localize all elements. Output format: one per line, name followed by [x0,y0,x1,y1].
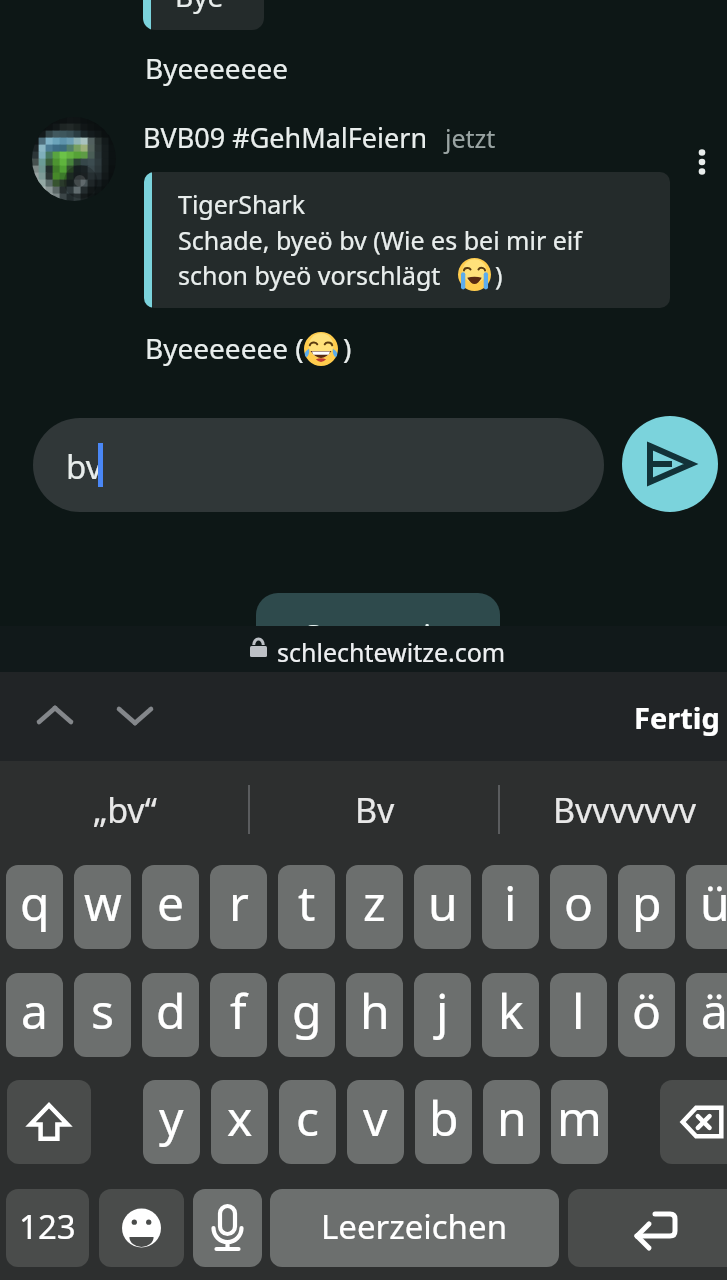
button[interactable]: More options [686,136,718,186]
button[interactable]: Shift [7,1080,91,1164]
staticText: z [363,870,386,935]
staticText: l [572,978,585,1043]
button[interactable]: bv [33,418,604,512]
staticText: bv [66,444,103,489]
staticText: y [159,1085,184,1150]
button[interactable]: Emoji [99,1189,184,1267]
button[interactable]: ö [618,973,675,1057]
button[interactable]: j [414,973,471,1057]
button[interactable]: g [278,973,335,1057]
button[interactable]: w [74,865,131,949]
button[interactable]: Community [256,593,500,633]
button[interactable]: BVB09 #GehMalFeiern [143,119,496,156]
staticText: u [428,870,458,935]
button[interactable]: Voice input [193,1189,262,1267]
staticText: o [564,870,594,935]
button[interactable]: z [346,865,403,949]
staticText: „bv“ [93,787,157,833]
button[interactable]: f [210,973,267,1057]
button[interactable]: k [482,973,539,1057]
staticText: t [298,870,316,935]
staticText: k [498,978,524,1043]
button[interactable]: u [414,865,471,949]
button[interactable]: o [550,865,607,949]
button[interactable]: d [142,973,199,1057]
button[interactable]: TigerShark [144,172,670,308]
staticText: ö [632,978,662,1043]
button[interactable]: ä [686,973,727,1057]
button[interactable]: Bv [250,761,500,841]
staticText: Bv [355,787,395,833]
staticText: w [84,870,122,935]
staticText: e [157,870,185,935]
staticText: Byeeeeeee [145,49,289,87]
staticText: g [292,978,322,1043]
staticText: r [229,870,249,935]
button[interactable]: y [143,1080,200,1164]
staticText: a [21,978,48,1043]
button[interactable]: Profile picture [32,117,116,201]
button[interactable]: ü [686,865,727,949]
button[interactable]: h [346,973,403,1057]
staticText: Byeeeeeee ( [145,329,304,367]
staticText: Community [302,615,456,633]
button[interactable]: q [6,865,63,949]
staticText: 123 [19,1204,76,1249]
staticText: ü [700,870,727,935]
staticText: d [156,978,186,1043]
staticText: schon byeö vorschlägt [178,258,447,292]
button[interactable]: m [551,1080,608,1164]
button[interactable]: a [6,973,63,1057]
staticText: ) [495,258,503,292]
staticText: Fertig [634,698,720,737]
button[interactable]: Next field [110,691,160,741]
button[interactable]: i [482,865,539,949]
button[interactable]: x [211,1080,268,1164]
button[interactable]: Bye [143,0,264,30]
staticText: b [429,1085,459,1150]
button[interactable]: n [483,1080,540,1164]
button[interactable]: Leerzeichen [270,1189,559,1267]
button[interactable]: p [618,865,675,949]
staticText: x [227,1085,253,1150]
staticText: ) [343,329,352,367]
staticText: j [436,978,449,1043]
button[interactable]: Send [622,416,718,512]
button[interactable]: b [415,1080,472,1164]
staticText: ä [701,978,727,1043]
staticText: jetzt [445,121,496,155]
button[interactable]: „bv“ [0,761,250,841]
button[interactable]: l [550,973,607,1057]
staticText: Schade, byeö bv (Wie es bei mir eif [178,223,582,257]
button[interactable]: Enter [568,1189,727,1267]
button[interactable]: Backspace [660,1080,727,1164]
button[interactable]: s [74,973,131,1057]
staticText: Bvvvvvvv [553,787,697,833]
button[interactable]: Previous field [30,691,80,741]
staticText: i [504,870,517,935]
button[interactable]: Fertig [634,698,720,737]
staticText: v [363,1085,388,1150]
staticText: s [91,978,114,1043]
staticText: c [296,1085,320,1150]
staticText: m [557,1085,602,1150]
button[interactable]: e [142,865,199,949]
staticText: q [20,870,50,935]
staticText: f [230,978,247,1043]
button[interactable]: Bvvvvvvv [500,761,727,841]
button[interactable]: r [210,865,267,949]
button[interactable]: v [347,1080,404,1164]
staticText: TigerShark [178,187,306,221]
staticText: p [632,870,662,935]
staticText: n [497,1085,527,1150]
button[interactable]: t [278,865,335,949]
button[interactable]: 123 [6,1189,89,1267]
staticText: BVB09 #GehMalFeiern [143,119,428,156]
button[interactable]: c [279,1080,336,1164]
staticText: schlechtewitze.com [277,635,506,669]
staticText: Leerzeichen [321,1204,508,1249]
staticText: h [360,978,390,1043]
staticText: Bye [175,0,224,15]
